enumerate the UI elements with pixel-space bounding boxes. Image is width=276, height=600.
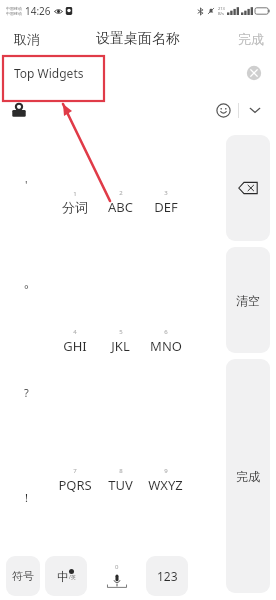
staticText: 1 bbox=[73, 190, 77, 198]
button[interactable]: 完成 bbox=[226, 359, 270, 593]
staticText: /英 bbox=[69, 574, 76, 581]
button[interactable]: Space, voice input bbox=[92, 556, 141, 596]
button[interactable]: 1 bbox=[52, 132, 98, 272]
button[interactable]: Backspace bbox=[226, 135, 270, 241]
staticText: Top Widgets bbox=[14, 65, 84, 81]
staticText: 123 bbox=[157, 568, 178, 584]
staticText: 中 bbox=[57, 569, 69, 584]
staticText: 分词 bbox=[62, 199, 88, 215]
staticText: 8 bbox=[119, 467, 123, 475]
button[interactable]: 123 bbox=[146, 556, 188, 596]
staticText: 6 bbox=[164, 328, 168, 336]
staticText: GHI bbox=[63, 337, 87, 355]
button[interactable]: Top Widgets bbox=[0, 55, 276, 91]
staticText: 完成 bbox=[238, 31, 264, 47]
button[interactable]: Clear text bbox=[246, 65, 262, 81]
button[interactable]: 9 bbox=[143, 411, 188, 550]
staticText: 7 bbox=[73, 467, 77, 475]
button[interactable]: ° bbox=[0, 236, 52, 340]
staticText: 2 bbox=[119, 189, 123, 197]
staticText: ! bbox=[25, 490, 28, 505]
staticText: 符号 bbox=[12, 569, 34, 583]
button[interactable]: 清空 bbox=[226, 247, 270, 353]
staticText: B/s bbox=[218, 11, 225, 16]
staticText: 中国移动 bbox=[6, 6, 22, 11]
staticText: 213 bbox=[218, 6, 225, 11]
button[interactable]: ! bbox=[0, 445, 52, 550]
staticText: 取消 bbox=[14, 31, 40, 47]
button[interactable]: 符号 bbox=[6, 556, 40, 596]
button[interactable]: Hide keyboard bbox=[244, 99, 266, 121]
staticText: PQRS bbox=[58, 476, 92, 494]
button[interactable]: 6 bbox=[143, 272, 188, 411]
staticText: ° bbox=[24, 281, 29, 296]
button[interactable]: 4 bbox=[52, 272, 98, 411]
button[interactable]: 中 bbox=[45, 556, 87, 596]
staticText: 3 bbox=[164, 189, 168, 197]
staticText: 设置桌面名称 bbox=[96, 30, 180, 48]
button[interactable]: 取消 bbox=[0, 24, 54, 54]
staticText: MNO bbox=[150, 337, 182, 355]
button[interactable]: 完成 bbox=[226, 24, 276, 54]
staticText: 4 bbox=[73, 328, 77, 336]
staticText: TUV bbox=[108, 476, 133, 494]
button[interactable]: 3 bbox=[143, 132, 188, 272]
button[interactable]: 8 bbox=[98, 411, 143, 550]
button[interactable]: 2 bbox=[98, 132, 143, 272]
staticText: WXYZ bbox=[148, 476, 183, 494]
staticText: 0 bbox=[115, 563, 119, 571]
staticText: ABC bbox=[108, 198, 133, 216]
button[interactable]: Input settings bbox=[11, 102, 27, 118]
staticText: ? bbox=[24, 385, 29, 400]
staticText: 中国移动 bbox=[6, 11, 22, 16]
staticText: 5 bbox=[119, 328, 123, 336]
staticText: 完成 bbox=[236, 469, 260, 484]
button[interactable]: 5 bbox=[98, 272, 143, 411]
staticText: 9 bbox=[164, 467, 168, 475]
staticText: ' bbox=[25, 177, 28, 192]
staticText: DEF bbox=[154, 198, 178, 216]
staticText: JKL bbox=[111, 337, 130, 355]
button[interactable]: 7 bbox=[52, 411, 98, 550]
staticText: 清空 bbox=[236, 293, 260, 308]
button[interactable]: ? bbox=[0, 340, 52, 445]
staticText: 14:26 bbox=[25, 4, 51, 18]
button[interactable]: Emoji bbox=[213, 100, 233, 120]
